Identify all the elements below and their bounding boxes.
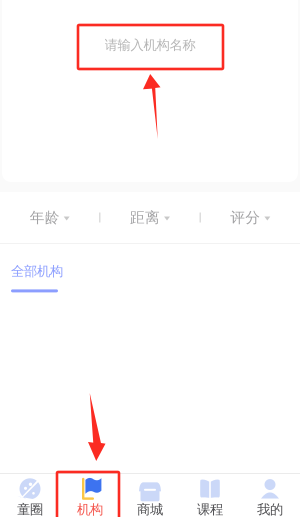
staticText: 请输入机构名称 <box>104 37 195 53</box>
button[interactable]: 课程 <box>180 474 240 517</box>
button[interactable]: 评分 <box>201 192 300 243</box>
button[interactable]: 年龄 <box>0 192 99 243</box>
staticText: 商城 <box>137 501 163 517</box>
button[interactable]: 请输入机构名称 <box>75 32 225 58</box>
button[interactable]: 全部机构 <box>0 263 63 292</box>
button[interactable]: 机构 <box>60 474 120 517</box>
staticText: 课程 <box>197 501 223 517</box>
staticText: 童圈 <box>17 501 43 517</box>
staticText: 年龄 <box>30 208 60 226</box>
staticText: 全部机构 <box>11 263 63 279</box>
button[interactable]: 我的 <box>240 474 300 517</box>
staticText: 机构 <box>77 501 103 517</box>
button[interactable]: 商城 <box>120 474 180 517</box>
button[interactable]: 童圈 <box>0 474 60 517</box>
staticText: 我的 <box>257 501 283 517</box>
staticText: 评分 <box>230 208 260 226</box>
staticText: 距离 <box>130 208 160 226</box>
button[interactable]: 距离 <box>100 192 200 243</box>
